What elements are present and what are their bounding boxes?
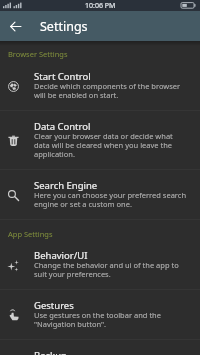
staticText: App Settings: [8, 229, 53, 239]
staticText: Change the behavior and ui of the app to…: [34, 260, 189, 279]
button[interactable]: Back: [0, 11, 30, 41]
staticText: Here you can choose your preferred searc…: [34, 190, 189, 209]
button[interactable]: Behavior/UI: [0, 240, 200, 289]
staticText: Behavior/UI: [34, 249, 88, 262]
button[interactable]: Backup: [0, 340, 200, 355]
staticText: Start Control: [34, 70, 91, 83]
staticText: Gestures: [34, 299, 74, 312]
staticText: Use gestures on the toolbar and the "Nav…: [34, 310, 189, 329]
staticText: Search Engine: [34, 179, 98, 192]
staticText: Data Control: [34, 120, 91, 133]
staticText: Decide which components of the browser w…: [34, 81, 189, 100]
staticText: Browser Settings: [8, 49, 68, 59]
staticText: Clear your browser data or decide what d…: [34, 131, 189, 159]
staticText: Backup: [34, 349, 67, 355]
button[interactable]: Gestures: [0, 290, 200, 339]
button[interactable]: Search Engine: [0, 170, 200, 219]
staticText: Settings: [40, 18, 88, 35]
staticText: 10:06 PM: [85, 1, 116, 11]
button[interactable]: Data Control: [0, 111, 200, 169]
button[interactable]: Start Control: [0, 61, 200, 110]
